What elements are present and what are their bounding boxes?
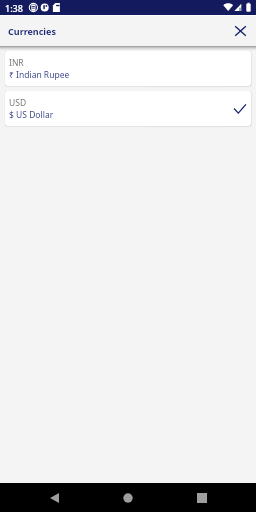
button[interactable]: Back [40,484,68,512]
staticText: INR [9,57,24,69]
staticText: 1:38 [5,2,23,14]
staticText: Currencies [8,25,56,37]
staticText: ₹ Indian Rupee [9,69,70,81]
button[interactable]: INR [5,51,251,86]
staticText: USD [9,97,27,109]
button[interactable]: Close [229,20,251,42]
button[interactable]: Home [114,484,142,512]
staticText: $ US Dollar [9,109,54,121]
button[interactable]: Recent apps [188,484,216,512]
button[interactable]: USD [5,91,251,126]
